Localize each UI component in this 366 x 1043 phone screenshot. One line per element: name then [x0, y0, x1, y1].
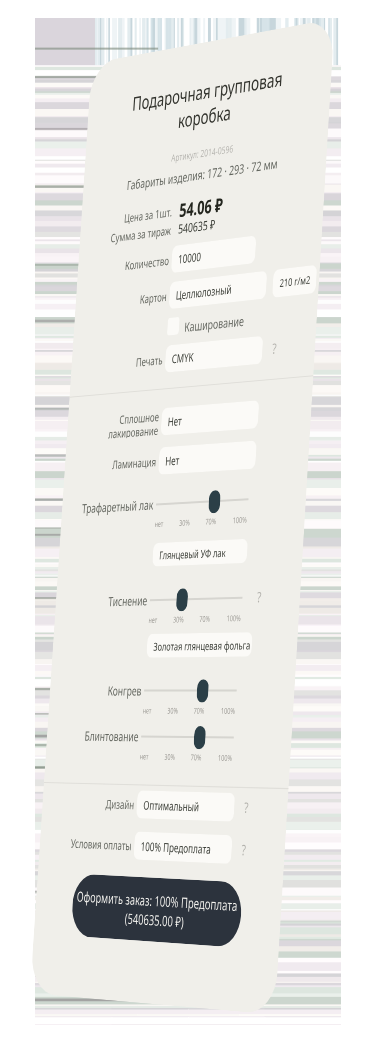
button[interactable]: Трафаретный лак [155, 486, 249, 517]
button[interactable]: Оформить заказ: 100% Предоплата (540635.… [70, 874, 243, 948]
staticText: нет [148, 614, 158, 625]
staticText: Цена за 1шт. [123, 204, 173, 226]
button[interactable]: Справка [234, 835, 254, 863]
button[interactable]: Нет [160, 400, 259, 436]
staticText: 70% [199, 613, 211, 624]
staticText: Оформить заказ: 100% Предоплата (540635.… [75, 887, 238, 935]
staticText: Печать [135, 351, 163, 370]
staticText: Картон [139, 288, 167, 307]
staticText: Целлюлозный [175, 281, 233, 303]
button[interactable]: Оптимальный [136, 790, 235, 822]
staticText: нет [154, 518, 164, 529]
staticText: 70% [193, 705, 205, 716]
staticText: Конгрев [107, 682, 142, 699]
staticText: Габариты изделия: 172 · 293 · 72 мм [82, 147, 327, 200]
staticText: Нет [167, 412, 182, 429]
staticText: 100% [218, 752, 233, 763]
staticText: Нет [165, 452, 180, 468]
button[interactable]: Блинтование [140, 723, 235, 751]
staticText: Оптимальный [143, 796, 200, 814]
staticText: Сумма за тираж [110, 222, 171, 245]
button[interactable]: CMYK [164, 336, 263, 373]
button[interactable]: Конгрев [143, 677, 238, 704]
staticText: ? [256, 587, 263, 606]
button[interactable]: 10000 [171, 235, 256, 273]
staticText: 100% [232, 513, 248, 525]
button[interactable]: 210 г/м2 [272, 265, 317, 298]
staticText: нет [140, 750, 149, 761]
staticText: Подарочная групповая коробка [124, 64, 290, 141]
staticText: 100% [226, 612, 242, 623]
staticText: 30% [179, 516, 190, 528]
staticText: 54.06 ₽ [179, 192, 224, 223]
button[interactable]: Каширование [167, 317, 180, 336]
staticText: ? [241, 840, 247, 860]
button[interactable]: Справка [265, 334, 284, 362]
staticText: 70% [205, 515, 217, 527]
staticText: ? [244, 797, 250, 817]
button[interactable]: Справка [249, 583, 269, 610]
staticText: 30% [164, 751, 175, 762]
button[interactable]: 100% Предоплата [133, 831, 233, 864]
staticText: 30% [167, 705, 178, 716]
staticText: нет [142, 704, 152, 715]
staticText: 10000 [178, 248, 202, 267]
staticText: 100% Предоплата [140, 838, 211, 857]
staticText: ? [272, 338, 278, 358]
staticText: Артикул: 2014-0596 [84, 127, 328, 178]
button[interactable]: Глянцевый УФ лак [152, 539, 248, 567]
staticText: Блинтование [84, 727, 139, 745]
staticText: 540635 ₽ [178, 215, 216, 238]
button[interactable]: Тиснение [149, 584, 243, 613]
staticText: Условия оплаты [70, 835, 132, 853]
staticText: 30% [173, 613, 184, 624]
staticText: Трафаретный лак [81, 496, 154, 517]
staticText: Ламинация [112, 453, 157, 472]
staticText: 210 г/м2 [279, 272, 311, 290]
button[interactable]: Золотая глянцевая фольга [146, 632, 253, 658]
button[interactable]: Справка [236, 793, 256, 820]
staticText: Глянцевый УФ лак [159, 545, 226, 562]
staticText: 100% [221, 705, 236, 716]
staticText: Золотая глянцевая фольга [153, 637, 251, 654]
button[interactable]: Целлюлозный [168, 271, 267, 309]
staticText: Каширование [184, 312, 245, 336]
staticText: Количество [125, 252, 170, 273]
button[interactable]: Нет [158, 440, 257, 475]
staticText: CMYK [171, 348, 194, 366]
staticText: Тиснение [108, 591, 148, 610]
staticText: Сплошное лакирование [108, 408, 160, 439]
staticText: 70% [190, 751, 202, 762]
staticText: Дизайн [105, 795, 135, 812]
